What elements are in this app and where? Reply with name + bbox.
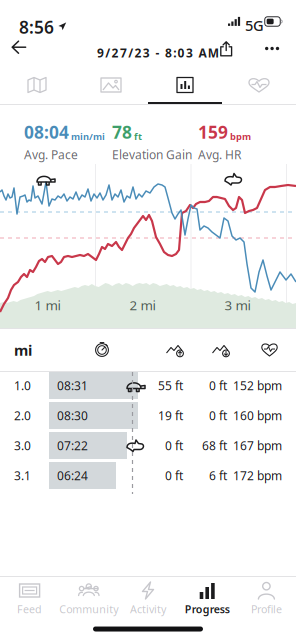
staticText: 55 ft (158, 377, 183, 393)
button[interactable]: Heart rate (222, 68, 296, 104)
staticText: 2 mi (129, 296, 155, 314)
staticText: 1.0 (14, 377, 31, 393)
staticText: Avg. HR (198, 146, 241, 162)
button[interactable]: Feed (0, 577, 59, 618)
button[interactable]: Community (59, 577, 118, 618)
staticText: 78 (112, 120, 132, 143)
button[interactable]: Charts (148, 68, 222, 104)
staticText: Avg. Pace (24, 146, 78, 162)
staticText: 159 (198, 120, 228, 143)
staticText: 08:31 (57, 377, 88, 393)
staticText: 6 ft (209, 467, 227, 483)
staticText: 3.1 (14, 467, 31, 483)
staticText: 19 ft (158, 407, 183, 423)
staticText: 172 bpm (233, 467, 282, 483)
staticText: Community (59, 602, 118, 616)
staticText: 08:30 (57, 407, 88, 423)
button[interactable]: Activity (118, 577, 178, 618)
staticText: 08:04 (24, 120, 69, 143)
staticText: 0 ft (209, 407, 227, 423)
button[interactable]: Share (210, 31, 242, 67)
staticText: Feed (17, 602, 42, 616)
staticText: 68 ft (202, 437, 227, 453)
staticText: 1 mi (34, 296, 60, 314)
staticText: 0 ft (209, 377, 227, 393)
staticText: Activity (130, 602, 166, 616)
button[interactable]: Photos (74, 68, 148, 104)
staticText: Progress (185, 602, 230, 616)
staticText: 06:24 (57, 467, 88, 483)
staticText: 167 bpm (233, 437, 282, 453)
button[interactable]: Map (0, 68, 74, 104)
button[interactable]: Progress (178, 577, 237, 618)
button[interactable]: More options (255, 31, 289, 66)
staticText: 3.0 (14, 437, 31, 453)
button[interactable]: Back (1, 30, 37, 65)
staticText: Profile (251, 602, 282, 616)
staticText: 2.0 (14, 407, 31, 423)
button[interactable]: Profile (237, 577, 296, 618)
staticText: 152 bpm (233, 377, 282, 393)
staticText: mi (14, 340, 32, 360)
staticText: 5G (245, 15, 264, 35)
staticText: 9/27/23 - 8:03 AM (97, 45, 219, 61)
staticText: 3 mi (224, 296, 250, 314)
staticText: bpm (230, 130, 251, 142)
staticText: min/mi (71, 130, 105, 142)
staticText: 160 bpm (233, 407, 282, 423)
staticText: 07:22 (57, 437, 88, 453)
staticText: ft (134, 130, 142, 142)
staticText: 0 ft (165, 437, 183, 453)
staticText: Elevation Gain (112, 146, 192, 162)
staticText: 8:56 (19, 15, 54, 38)
staticText: 0 ft (165, 467, 183, 483)
